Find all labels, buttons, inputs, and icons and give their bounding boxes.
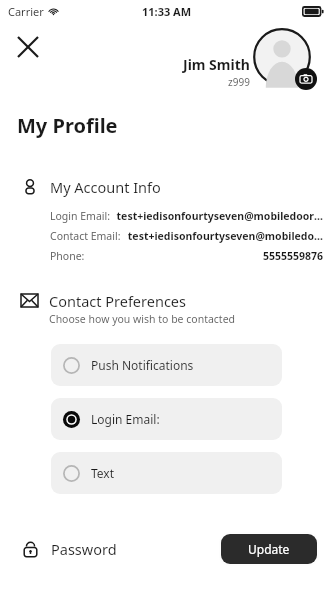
staticText: Text: [91, 465, 115, 481]
staticText: Login Email:: [91, 411, 160, 427]
staticText: 5555559876: [89, 249, 323, 263]
staticText: z999: [228, 75, 250, 89]
button[interactable]: Update: [221, 534, 317, 564]
button[interactable]: Login Email:: [51, 398, 282, 440]
button[interactable]: Close: [12, 31, 44, 63]
staticText: 11:33 AM: [142, 4, 192, 19]
staticText: Push Notifications: [91, 357, 194, 373]
staticText: Update: [248, 541, 290, 557]
staticText: My Account Info: [50, 177, 161, 197]
button[interactable]: Password: [22, 539, 117, 559]
staticText: My Profile: [17, 112, 118, 139]
staticText: test+iedisonfourtyseven@mobiledoor…: [125, 229, 323, 243]
button[interactable]: Text: [51, 452, 282, 494]
staticText: Contact Preferences: [49, 291, 186, 311]
button[interactable]: Push Notifications: [51, 344, 282, 386]
staticText: Login Email:: [50, 209, 111, 223]
staticText: Carrier: [8, 4, 44, 19]
button[interactable]: Change profile photo: [251, 28, 321, 98]
staticText: Phone:: [50, 249, 85, 263]
staticText: Jim Smith: [183, 55, 250, 74]
staticText: Password: [51, 539, 117, 559]
staticText: Contact Email:: [50, 229, 121, 243]
staticText: test+iedisonfourtyseven@mobiledoorma…: [115, 209, 323, 223]
staticText: Choose how you wish to be contacted: [49, 312, 236, 326]
